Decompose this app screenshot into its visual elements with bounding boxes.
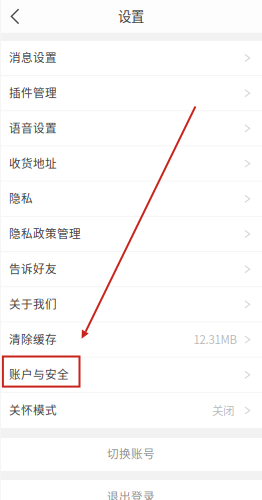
button[interactable]: 关于我们 (0, 287, 262, 322)
staticText: 设置 (118, 6, 144, 25)
button[interactable]: 插件管理 (0, 76, 262, 111)
button[interactable]: 关怀模式 (0, 393, 262, 428)
staticText: 消息设置 (9, 49, 57, 65)
button[interactable]: 退出登录 (0, 480, 262, 500)
button[interactable]: 语音设置 (0, 111, 262, 146)
staticText: 切换账号 (107, 445, 155, 461)
staticText: 关闭 (212, 402, 234, 418)
staticText: 隐私政策管理 (9, 225, 81, 241)
staticText: 账户与安全 (9, 365, 69, 382)
button[interactable]: 收货地址 (0, 146, 262, 182)
button[interactable]: Back (0, 0, 29, 33)
staticText: 告诉好友 (9, 260, 57, 277)
button[interactable]: 账户与安全 (0, 358, 262, 393)
staticText: 关于我们 (9, 295, 57, 312)
staticText: 隐私 (9, 189, 33, 206)
staticText: 收货地址 (9, 154, 57, 171)
button[interactable]: 隐私 (0, 182, 262, 217)
staticText: 语音设置 (9, 119, 57, 136)
button[interactable]: 隐私政策管理 (0, 217, 262, 252)
staticText: 12.31MB (193, 331, 237, 347)
staticText: 清除缓存 (9, 330, 57, 347)
button[interactable]: 清除缓存 (0, 322, 262, 358)
button[interactable]: 切换账号 (0, 438, 262, 471)
staticText: 插件管理 (9, 84, 57, 101)
staticText: 关怀模式 (9, 401, 57, 418)
staticText: 退出登录 (107, 488, 155, 500)
button[interactable]: 消息设置 (0, 41, 262, 76)
button[interactable]: 告诉好友 (0, 252, 262, 287)
